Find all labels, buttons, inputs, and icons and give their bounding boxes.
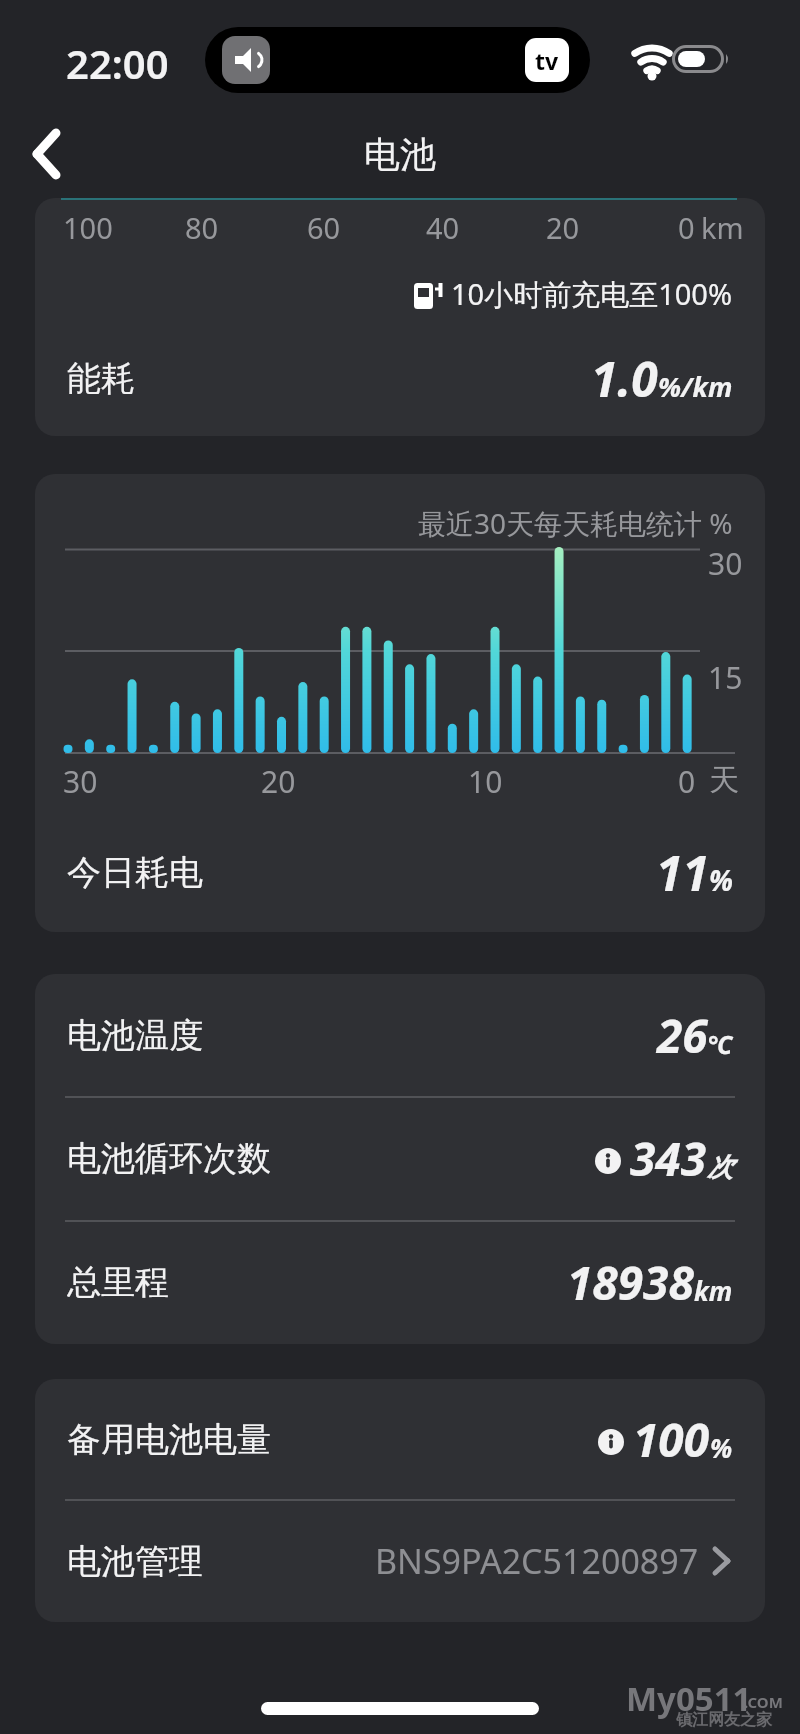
button[interactable]: 总里程	[67, 1221, 733, 1343]
staticText: .COM	[744, 1692, 783, 1712]
staticText: 11	[656, 840, 709, 905]
staticText: 电池循环次数	[67, 1137, 271, 1180]
staticText: tv	[535, 45, 559, 76]
staticText: 0	[678, 208, 695, 247]
staticText: 0	[678, 761, 696, 802]
staticText: 备用电池电量	[67, 1418, 271, 1461]
staticText: 30	[63, 761, 98, 802]
staticText: %/km	[658, 368, 733, 405]
staticText: 次	[707, 1151, 733, 1184]
staticText: 电池	[0, 132, 800, 177]
staticText: 电池管理	[67, 1540, 203, 1583]
staticText: 40	[426, 208, 460, 247]
button[interactable]	[30, 128, 64, 180]
staticText: km	[701, 208, 744, 247]
staticText: 100	[633, 1408, 710, 1471]
staticText: 天	[709, 761, 739, 799]
staticText: 100	[63, 208, 113, 247]
staticText: 10	[468, 761, 503, 802]
staticText: 1.0	[591, 346, 658, 411]
staticText: 镇江网友之家	[676, 1710, 772, 1730]
staticText: 15	[708, 657, 743, 698]
button[interactable]: 100	[35, 198, 765, 436]
button[interactable]: 最近30天每天耗电统计 %	[35, 474, 765, 932]
staticText: My0511	[626, 1676, 752, 1721]
staticText: 10小时前充电至100%	[451, 274, 733, 314]
staticText: 80	[185, 208, 219, 247]
button[interactable]: 电池循环次数	[67, 1097, 733, 1219]
staticText: 今日耗电	[67, 851, 203, 894]
staticText: ℃	[708, 1027, 733, 1061]
button[interactable]: 电池管理	[67, 1500, 733, 1622]
staticText: 30	[708, 543, 743, 584]
staticText: %	[710, 1430, 733, 1465]
button[interactable]: 电池温度	[67, 974, 733, 1096]
staticText: 26	[657, 1004, 708, 1067]
staticText: 20	[546, 208, 580, 247]
staticText: 能耗	[67, 357, 135, 400]
staticText: 电池温度	[67, 1014, 203, 1057]
button[interactable]: 备用电池电量	[67, 1379, 733, 1499]
staticText: 343	[630, 1127, 707, 1190]
staticText: 20	[261, 761, 296, 802]
staticText: 最近30天每天耗电统计 %	[418, 504, 733, 542]
staticText: %	[709, 861, 733, 899]
staticText: km	[694, 1273, 733, 1308]
staticText: 22:00	[66, 36, 169, 90]
staticText: 18938	[567, 1251, 694, 1314]
staticText: BNS9PA2C51200897	[375, 1538, 699, 1584]
staticText: 60	[307, 208, 341, 247]
staticText: 总里程	[67, 1261, 169, 1304]
